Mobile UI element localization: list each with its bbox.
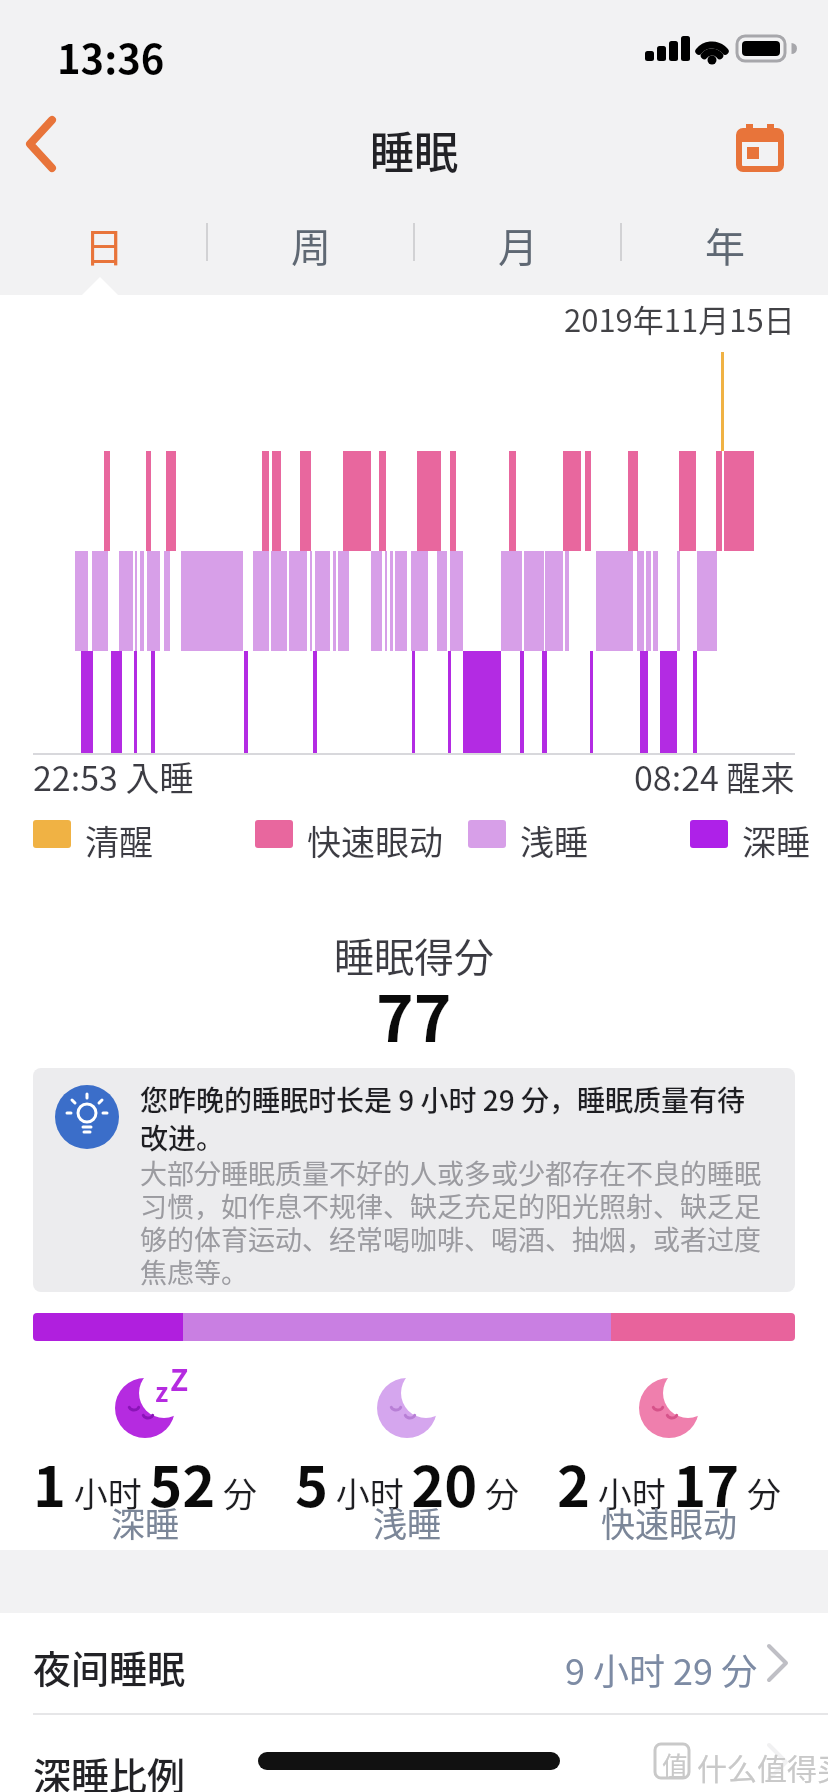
staticText: 1 小时 52 分: [33, 1442, 257, 1523]
staticText: 深睡: [111, 1498, 179, 1547]
staticText: Z: [170, 1356, 189, 1399]
button[interactable]: 深睡比例: [0, 1715, 828, 1792]
staticText: 浅睡: [520, 816, 588, 865]
staticText: 浅睡: [373, 1498, 441, 1547]
staticText: 值: [662, 1746, 689, 1784]
staticText: 2019年11月15日: [564, 296, 795, 341]
staticText: 您昨晚的睡眠时长是 9 小时 29 分，睡眠质量有待 改进。: [140, 1079, 746, 1157]
staticText: 2 小时 17 分: [557, 1442, 781, 1523]
staticText: 77: [376, 968, 452, 1061]
staticText: 深睡: [742, 816, 810, 865]
button[interactable]: [14, 108, 84, 184]
staticText: 5 小时 20 分: [295, 1442, 519, 1523]
staticText: 快速眼动: [601, 1498, 737, 1547]
staticText: 08:24 醒来: [634, 752, 795, 801]
staticText: 睡眠得分: [334, 926, 494, 984]
button[interactable]: 夜间睡眠: [0, 1613, 828, 1714]
button[interactable]: 日: [0, 205, 207, 285]
staticText: 22:53 入睡: [33, 752, 194, 801]
staticText: z: [155, 1372, 169, 1410]
staticText: 清醒: [85, 816, 153, 865]
staticText: 大部分睡眠质量不好的人或多或少都存在不良的睡眠 习惯，如作息不规律、缺乏充足的阳…: [140, 1153, 761, 1291]
staticText: 日: [84, 216, 124, 274]
staticText: 什么值得买: [697, 1745, 828, 1788]
button[interactable]: 月: [414, 205, 621, 285]
staticText: 周: [291, 216, 331, 274]
staticText: 快速眼动: [307, 816, 443, 865]
staticText: 13:36: [57, 28, 165, 86]
staticText: 夜间睡眠: [33, 1639, 186, 1694]
button[interactable]: [728, 114, 798, 184]
staticText: 深睡比例: [33, 1746, 186, 1792]
staticText: 睡眠: [370, 118, 458, 182]
button[interactable]: 周: [207, 205, 414, 285]
button[interactable]: 年: [621, 205, 828, 285]
staticText: 9 小时 29 分: [565, 1643, 758, 1695]
staticText: 年: [705, 216, 745, 274]
staticText: 月: [498, 216, 538, 274]
